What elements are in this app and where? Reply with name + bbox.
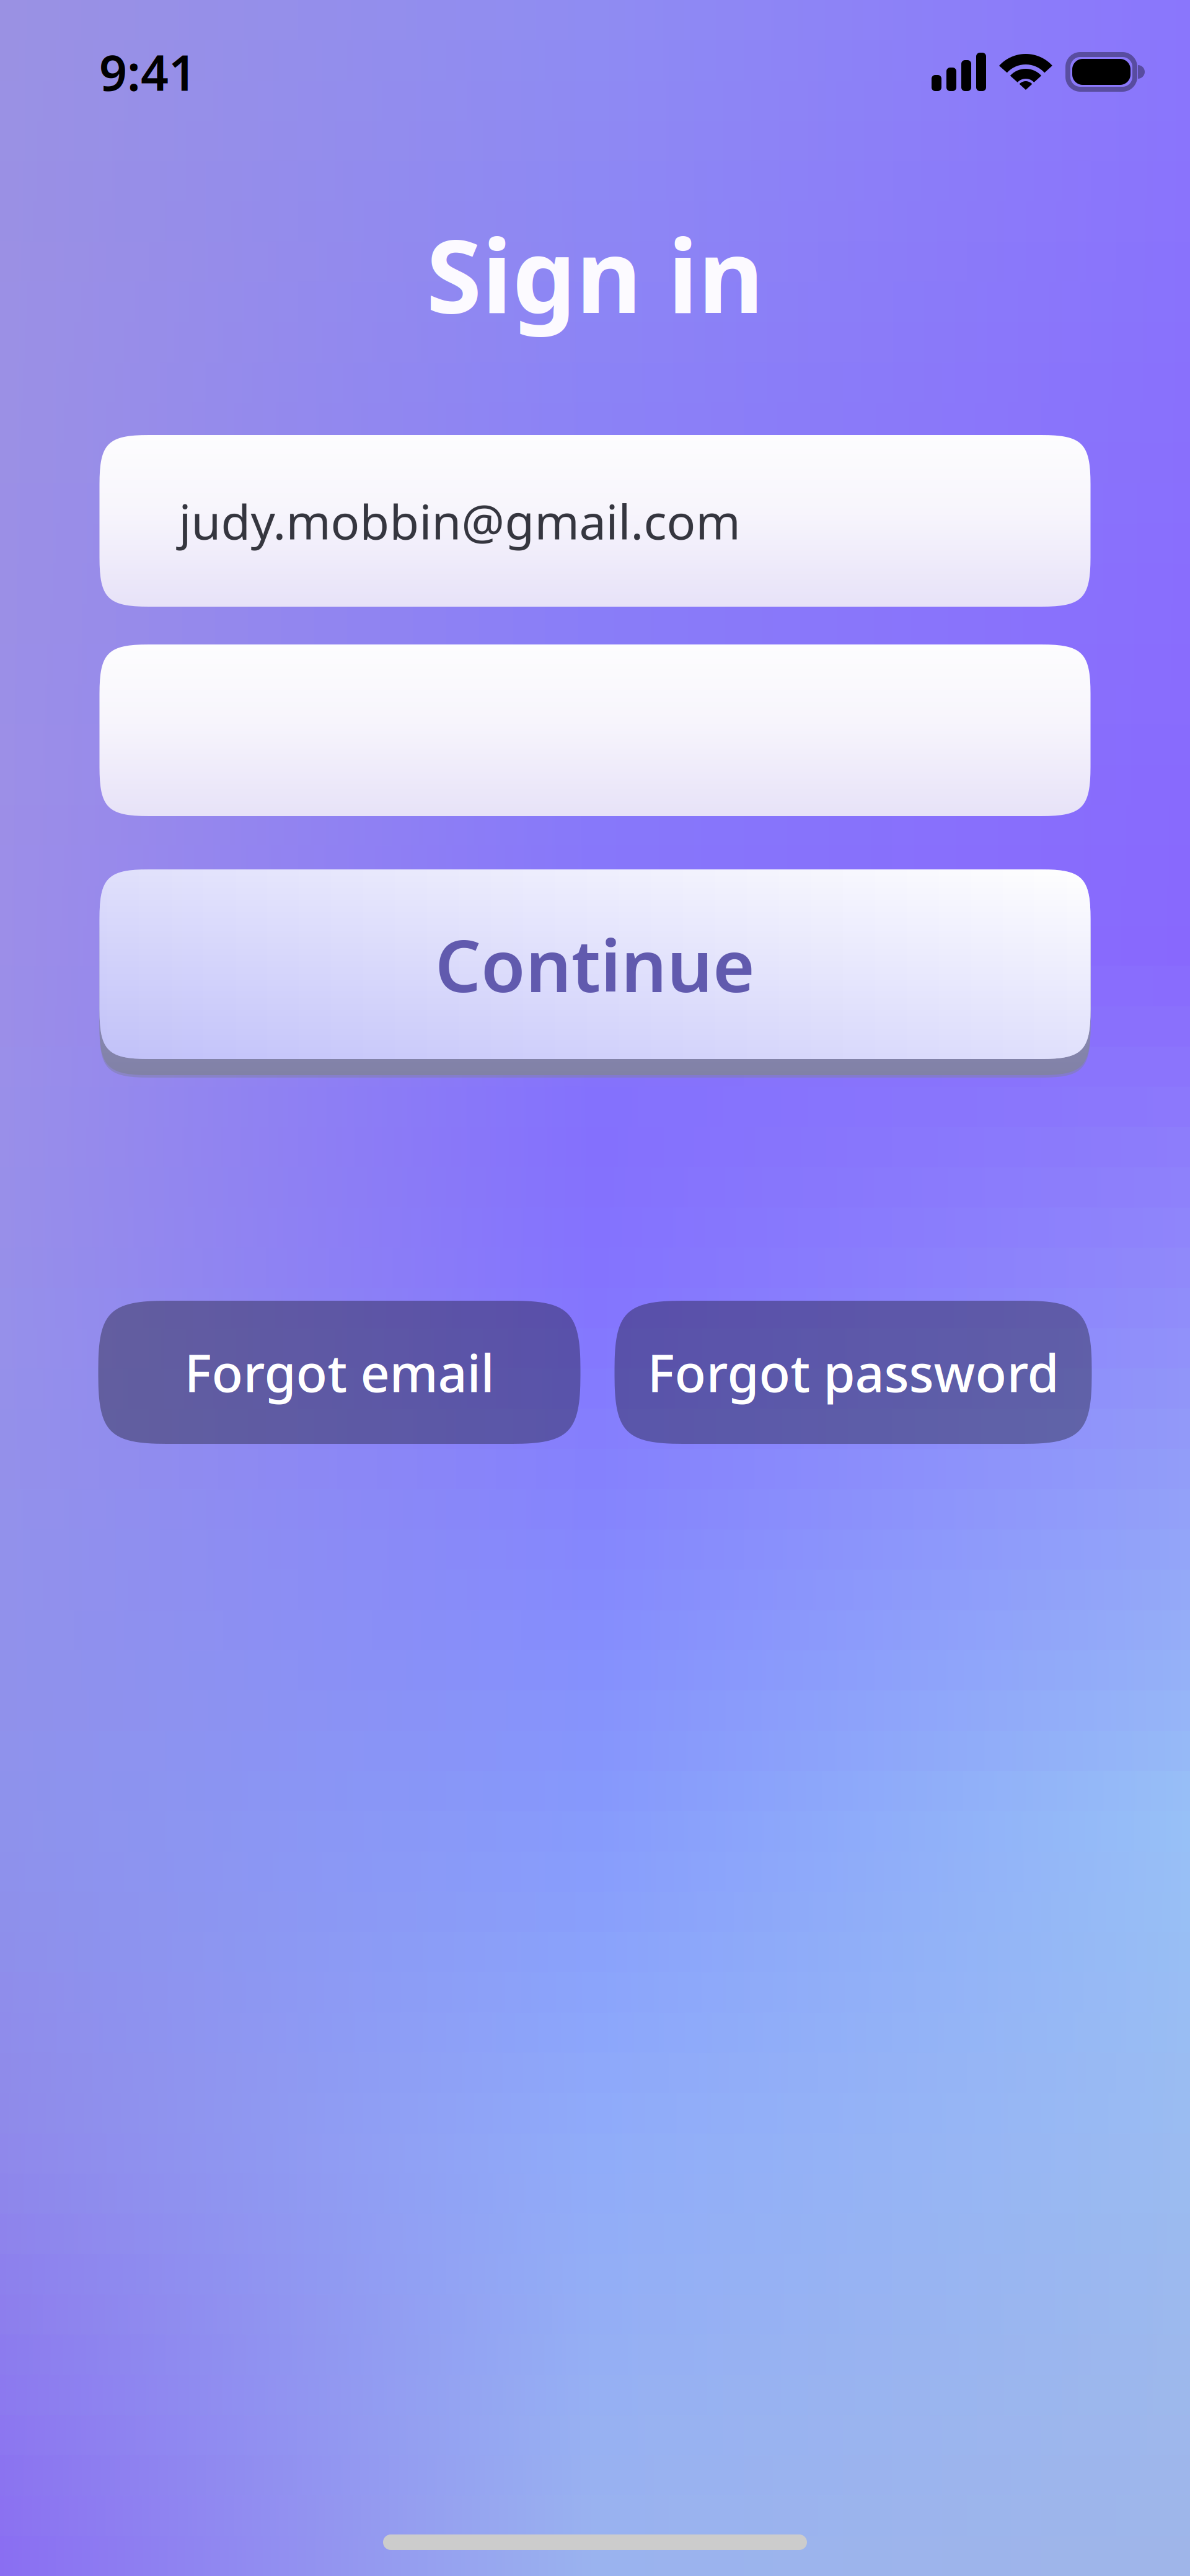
staticText: Continue <box>435 917 755 1012</box>
button[interactable]: Forgot password <box>615 1301 1092 1444</box>
staticText: judy.mobbin@gmail.com <box>179 489 740 553</box>
button[interactable]: Continue <box>99 869 1091 1075</box>
staticText: 9:41 <box>99 40 196 104</box>
staticText: Forgot email <box>184 1338 494 1406</box>
button[interactable]: Forgot email <box>98 1301 580 1444</box>
staticText: Forgot password <box>647 1338 1059 1406</box>
staticText: Sign in <box>426 207 764 341</box>
